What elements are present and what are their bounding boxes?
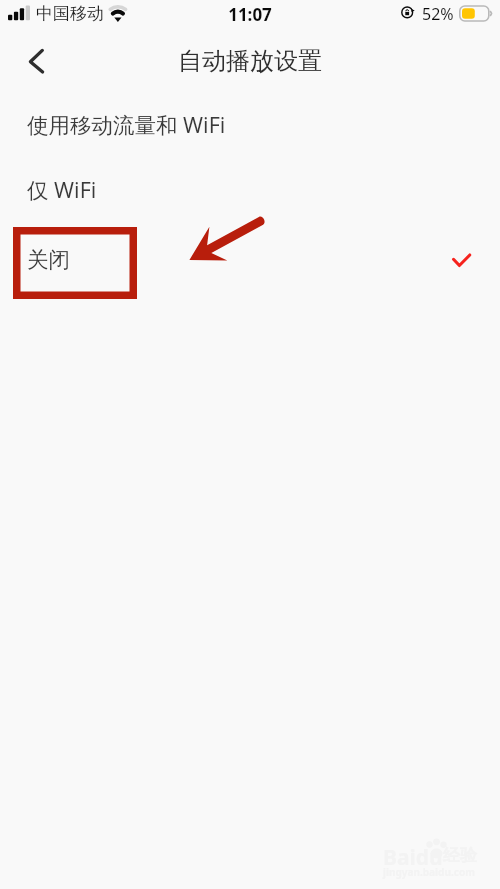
button[interactable]: 使用移动流量和 WiFi	[0, 92, 500, 157]
staticText: 自动播放设置	[178, 46, 322, 76]
button[interactable]: Back	[11, 34, 63, 86]
staticText: 仅 WiFi	[27, 175, 97, 204]
staticText: 关闭	[27, 246, 70, 273]
button[interactable]: 关闭	[0, 227, 500, 292]
button[interactable]: 仅 WiFi	[0, 157, 500, 222]
staticText: 11:07	[0, 3, 500, 26]
staticText: 使用移动流量和 WiFi	[27, 110, 226, 139]
staticText: 中国移动	[36, 3, 104, 24]
staticText: 52%	[422, 3, 454, 25]
